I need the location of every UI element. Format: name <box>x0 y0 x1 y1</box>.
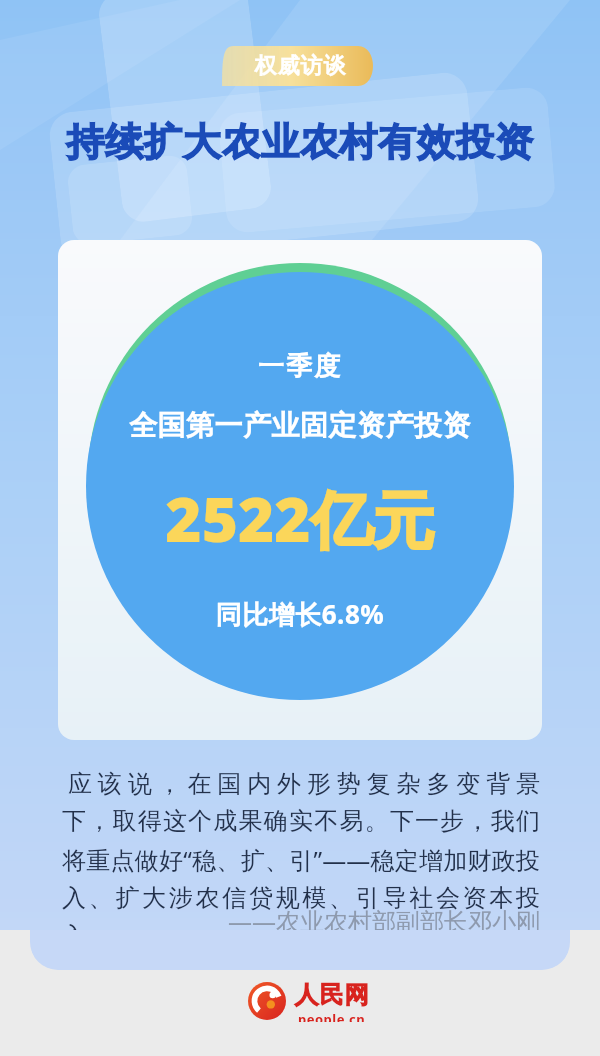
staticText: 权威访谈 <box>254 52 346 80</box>
staticText: 应该说，在国内外形势复杂多变背景下，取得这个成果确实不易。下一步，我们将重点做好… <box>62 766 540 952</box>
staticText: 2522亿元 <box>0 476 600 561</box>
button[interactable]: 人民网 people.cn <box>248 980 369 1022</box>
staticText: ——农业农村部副部长邓小刚 <box>0 904 540 937</box>
staticText: 全国第一产业固定资产投资 <box>0 408 600 443</box>
staticText: 同比增长6.8% <box>0 596 600 632</box>
staticText: people.cn <box>298 1010 366 1022</box>
staticText: 持续扩大农业农村有效投资 <box>0 118 600 166</box>
button[interactable]: 权威访谈 <box>222 46 378 86</box>
staticText: 一季度 <box>0 350 600 383</box>
staticText: 人民网 <box>294 980 369 1010</box>
